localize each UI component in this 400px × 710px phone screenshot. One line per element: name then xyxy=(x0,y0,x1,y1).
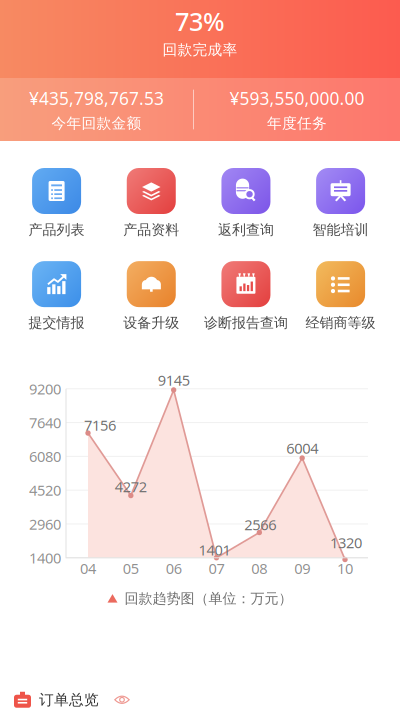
staticText: 10 xyxy=(337,558,353,578)
staticText: 9145 xyxy=(158,370,190,390)
staticText: 设备升级 xyxy=(123,314,179,332)
staticText: 经销商等级 xyxy=(306,314,376,332)
button[interactable]: 智能培训 xyxy=(293,168,388,239)
staticText: ¥435,798,767.53 xyxy=(29,86,164,110)
staticText: 1400 xyxy=(29,548,61,568)
staticText: 6080 xyxy=(29,446,61,466)
button[interactable]: 产品列表 xyxy=(9,168,104,239)
staticText: 9200 xyxy=(29,379,61,399)
staticText: 73% xyxy=(175,4,225,38)
button[interactable]: 产品资料 xyxy=(104,168,199,239)
staticText: 1401 xyxy=(198,540,230,560)
staticText: 订单总览 xyxy=(39,690,99,709)
button[interactable]: 返利查询 xyxy=(199,168,293,239)
staticText: 返利查询 xyxy=(218,221,274,239)
staticText: 08 xyxy=(251,558,267,578)
staticText: 7640 xyxy=(29,413,61,433)
staticText: 07 xyxy=(208,558,224,578)
staticText: 回款趋势图（单位：万元） xyxy=(124,590,292,607)
staticText: 05 xyxy=(123,558,139,578)
button[interactable]: 设备升级 xyxy=(104,261,199,332)
staticText: 2566 xyxy=(244,514,276,534)
button[interactable]: 经销商等级 xyxy=(293,261,388,332)
staticText: 产品列表 xyxy=(29,221,85,239)
staticText: ¥593,550,000.00 xyxy=(229,86,364,110)
staticText: 今年回款金额 xyxy=(51,114,141,133)
staticText: 回款完成率 xyxy=(162,40,237,59)
staticText: 提交情报 xyxy=(29,314,85,332)
staticText: 诊断报告查询 xyxy=(204,314,288,332)
staticText: 2960 xyxy=(29,514,61,534)
staticText: 6004 xyxy=(286,438,318,458)
button[interactable]: Toggle amounts xyxy=(114,695,130,705)
staticText: 7156 xyxy=(84,415,116,435)
staticText: 1320 xyxy=(330,532,362,552)
staticText: 06 xyxy=(166,558,182,578)
staticText: 年度任务 xyxy=(267,114,327,133)
staticText: 产品资料 xyxy=(123,221,179,239)
staticText: 4520 xyxy=(29,480,61,500)
button[interactable]: 提交情报 xyxy=(9,261,104,332)
staticText: 4272 xyxy=(115,477,147,497)
staticText: 智能培训 xyxy=(313,221,369,239)
staticText: 04 xyxy=(80,558,96,578)
button[interactable]: 诊断报告查询 xyxy=(199,261,293,332)
staticText: 09 xyxy=(294,558,310,578)
